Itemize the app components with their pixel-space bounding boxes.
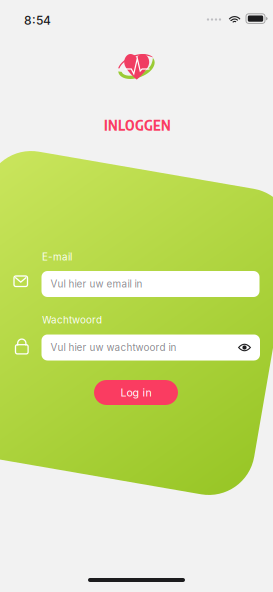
staticText: INLOGGEN [104, 116, 171, 134]
staticText: Vul hier uw wachtwoord in [50, 341, 176, 353]
staticText: E-mail [42, 251, 72, 263]
button[interactable]: Log in [94, 380, 178, 405]
staticText: 8:54 [24, 13, 51, 27]
staticText: Log in [120, 386, 151, 399]
staticText: Wachtwoord [42, 314, 102, 326]
button[interactable]: Vul hier uw email in [41, 271, 259, 297]
staticText: Vul hier uw email in [50, 278, 142, 290]
button[interactable]: INLOGGEN [104, 116, 171, 134]
button[interactable]: Vul hier uw wachtwoord in [41, 334, 260, 360]
